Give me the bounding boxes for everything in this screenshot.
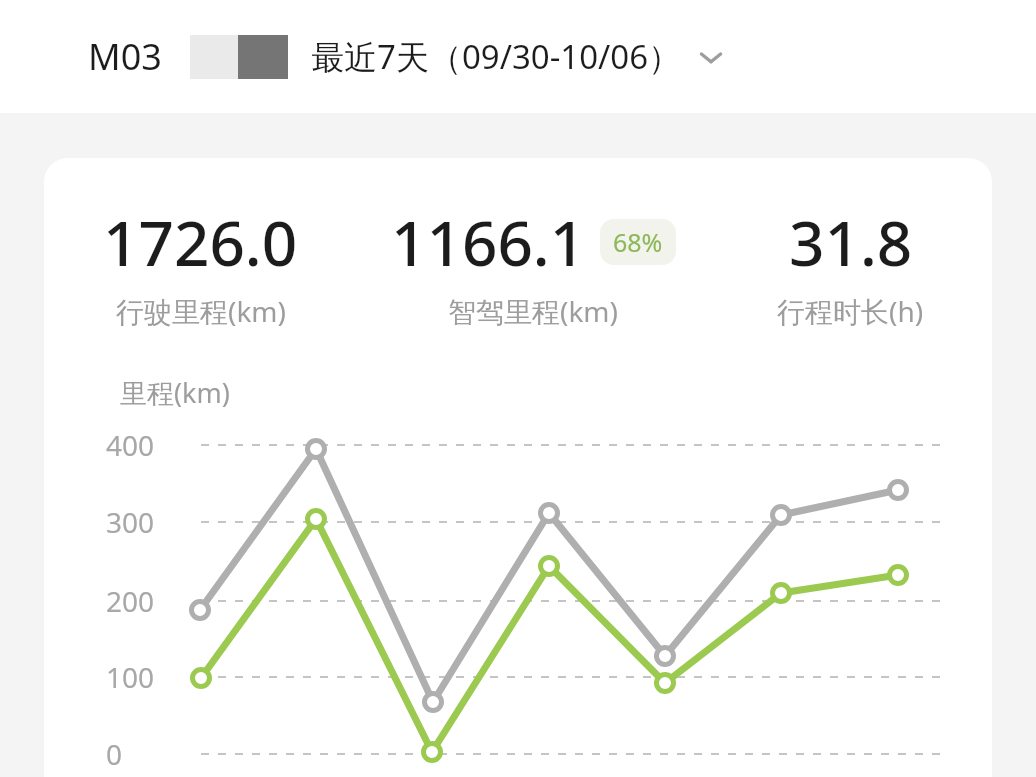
button[interactable]: 31.8 bbox=[709, 200, 992, 330]
staticText: 31.8 bbox=[789, 200, 913, 284]
staticText: 行驶里程(km) bbox=[116, 292, 286, 330]
other: Select date range bbox=[696, 42, 726, 72]
staticText: 里程(km) bbox=[120, 374, 230, 411]
staticText: 智驾里程(km) bbox=[448, 292, 618, 330]
staticText: 68% bbox=[613, 225, 663, 259]
staticText: 100 bbox=[106, 658, 155, 696]
staticText: 行程时长(h) bbox=[777, 292, 924, 330]
staticText: 1166.1 bbox=[391, 200, 586, 284]
staticText: 0 bbox=[106, 735, 123, 773]
staticText: 300 bbox=[106, 503, 155, 541]
staticText: 最近7天（09/30-10/06） bbox=[311, 34, 682, 79]
button[interactable]: 1166.1 bbox=[357, 200, 709, 330]
staticText: 400 bbox=[106, 426, 155, 464]
staticText: M03 bbox=[88, 32, 162, 81]
staticText: 1726.0 bbox=[103, 200, 298, 284]
staticText: 200 bbox=[106, 582, 155, 620]
button[interactable]: 最近7天（09/30-10/06） bbox=[303, 28, 734, 85]
button[interactable]: 1726.0 bbox=[44, 200, 357, 330]
